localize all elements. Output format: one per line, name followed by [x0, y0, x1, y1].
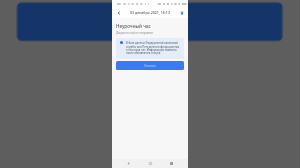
button[interactable]: Оплатить	[116, 61, 184, 70]
staticText: 03 декабря 2021, 16:13	[130, 10, 170, 15]
button[interactable]: Delete	[177, 8, 186, 17]
button[interactable]: Back	[124, 159, 133, 168]
staticText: В базе данных Федеральной налоговой служ…	[126, 41, 181, 54]
button[interactable]: Home	[146, 159, 155, 168]
button[interactable]: Recents	[167, 159, 176, 168]
staticText: Неурочный час	[116, 23, 151, 29]
button[interactable]: Back	[114, 8, 123, 17]
staticText: Документ ещё не отправлен	[116, 31, 154, 35]
staticText: Оплатить	[144, 64, 156, 68]
